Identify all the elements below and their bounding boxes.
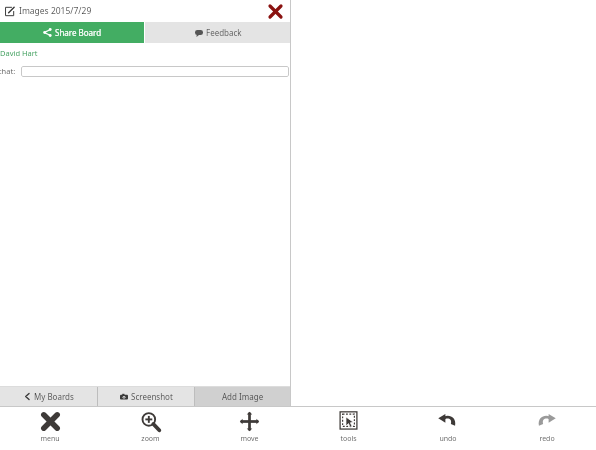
staticText: Share Board <box>55 27 102 38</box>
staticText: chat: <box>0 66 16 76</box>
button[interactable]: menu <box>0 407 100 450</box>
button[interactable]: zoom <box>100 407 200 450</box>
button[interactable]: My Boards <box>0 387 97 406</box>
staticText: tools <box>340 434 357 444</box>
staticText: menu <box>40 434 60 444</box>
button[interactable]: tools <box>299 407 398 450</box>
staticText: undo <box>439 434 457 444</box>
button[interactable]: Add Image <box>195 387 291 406</box>
button[interactable]: Close <box>267 3 283 19</box>
staticText: Add Image <box>222 391 264 402</box>
button[interactable]: Screenshot <box>98 387 194 406</box>
staticText: redo <box>539 434 555 444</box>
button[interactable]: move <box>200 407 299 450</box>
button[interactable] <box>21 66 289 77</box>
button[interactable]: Feedback <box>145 22 291 43</box>
staticText: Images 2015/7/29 <box>19 5 92 17</box>
staticText: Screenshot <box>131 391 173 402</box>
button[interactable]: undo <box>398 407 497 450</box>
button[interactable]: redo <box>497 407 596 450</box>
staticText: move <box>240 434 259 444</box>
button[interactable]: Share Board <box>0 22 144 43</box>
staticText: David Hart <box>0 48 38 58</box>
staticText: My Boards <box>34 391 74 402</box>
staticText: Feedback <box>206 27 242 38</box>
staticText: zoom <box>141 434 160 444</box>
